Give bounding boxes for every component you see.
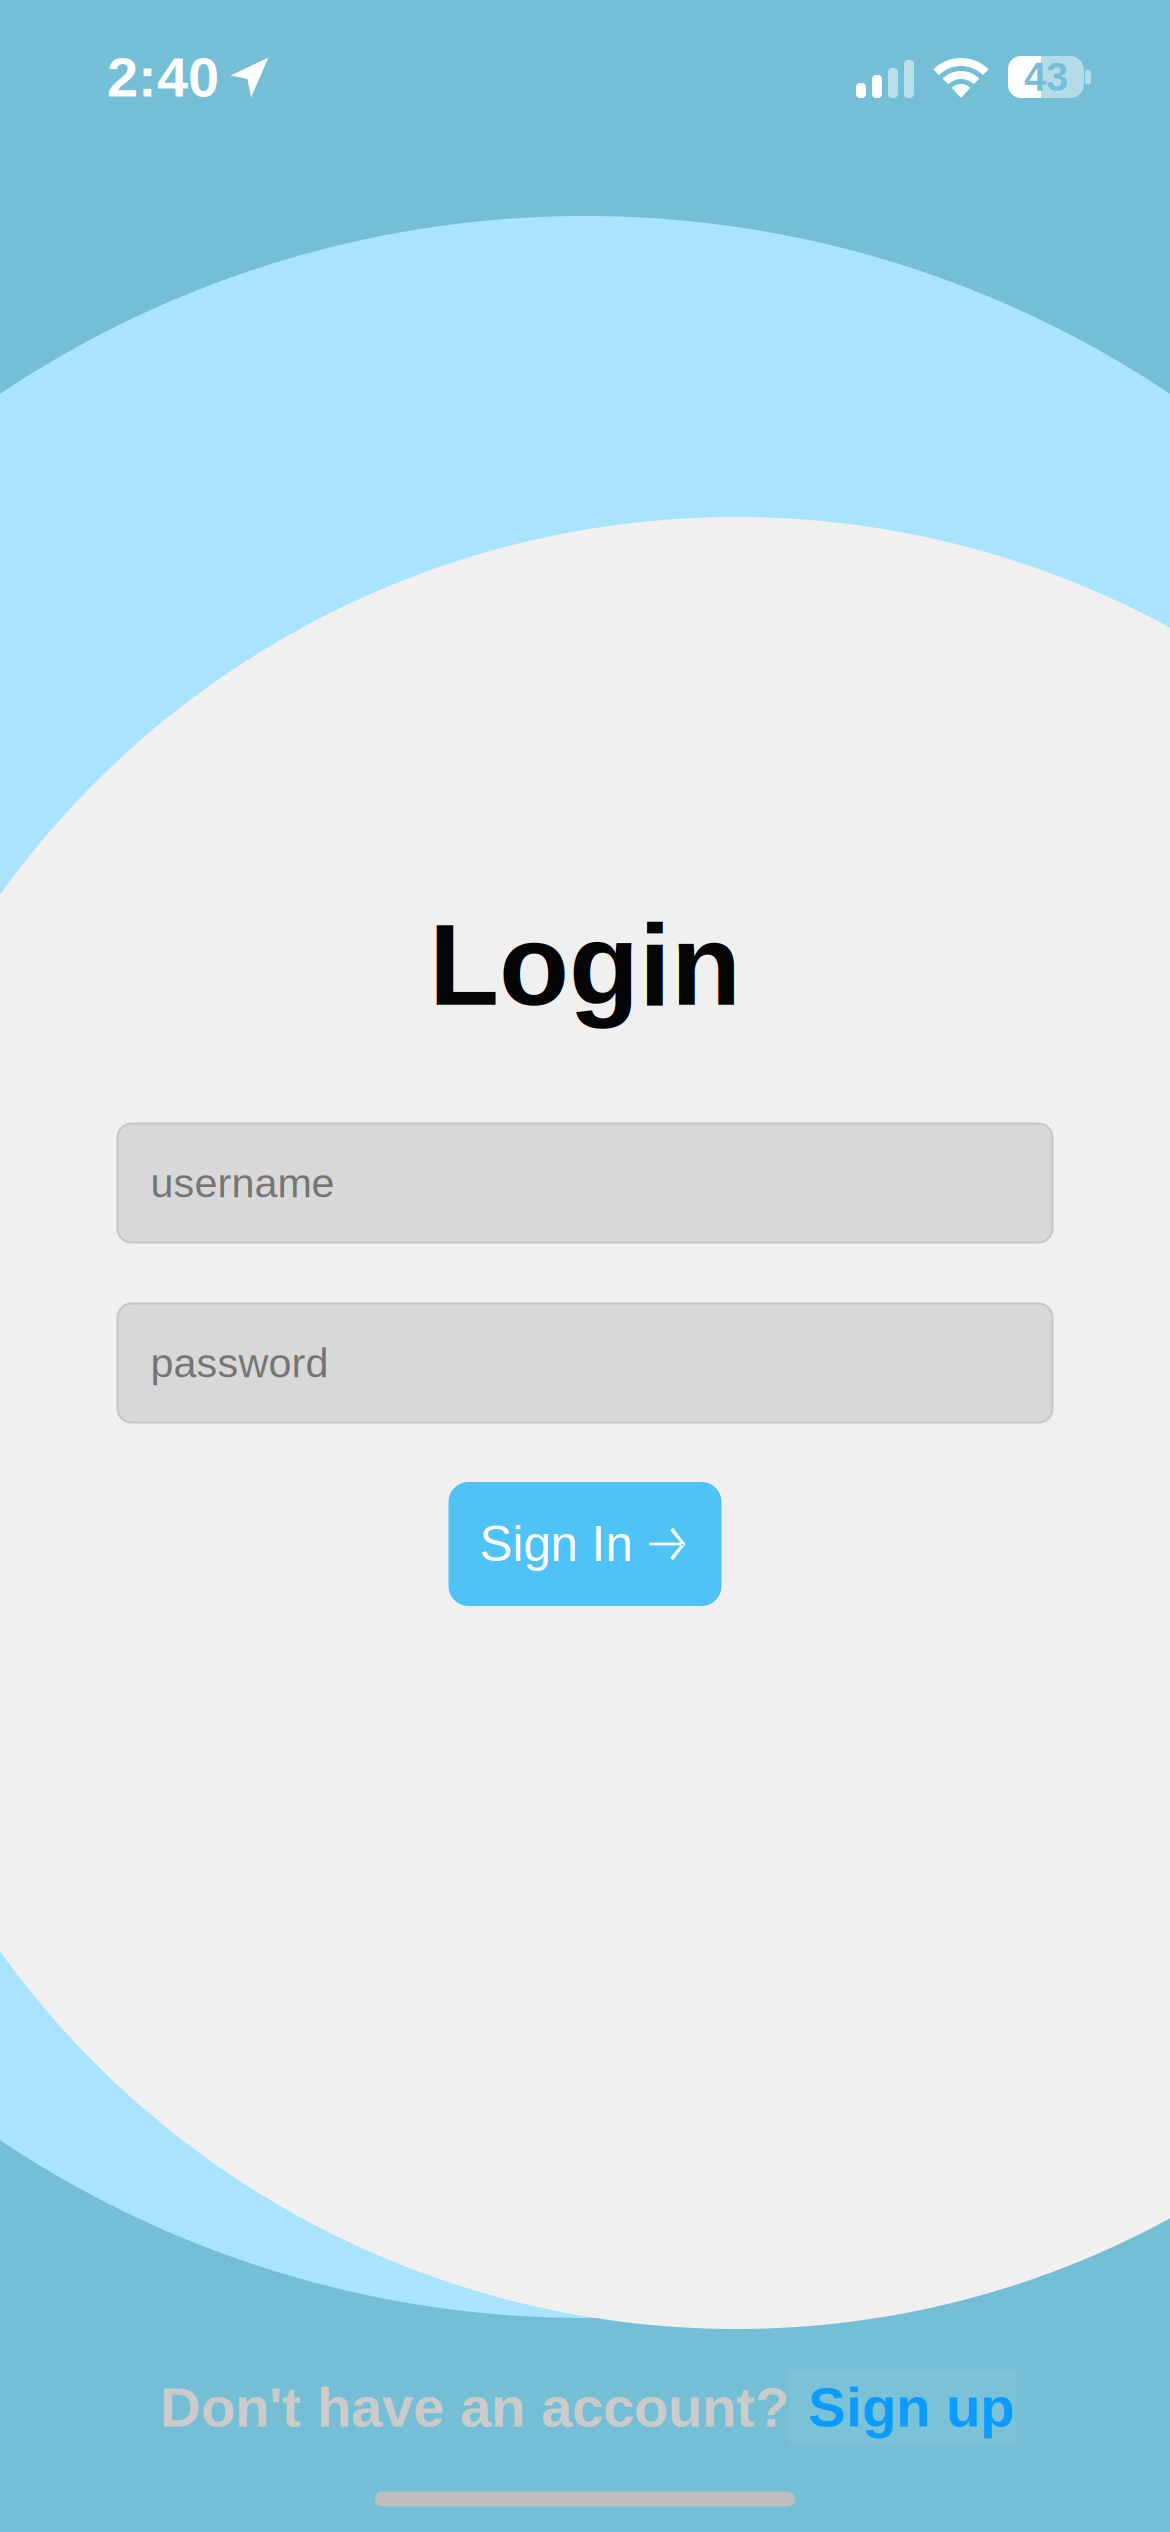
staticText: 43 xyxy=(1024,55,1068,99)
staticText: password xyxy=(150,1340,328,1386)
staticText: 2:40 xyxy=(107,46,219,108)
button[interactable]: password xyxy=(117,1303,1052,1422)
staticText: Login xyxy=(429,901,741,1029)
staticText: Sign up xyxy=(808,2376,1014,2438)
button[interactable]: Don't have an account? xyxy=(160,2370,1016,2444)
staticText: Sign In xyxy=(479,1516,632,1571)
button[interactable]: username xyxy=(117,1123,1052,1242)
staticText: Don't have an account? xyxy=(160,2376,789,2438)
staticText: username xyxy=(150,1160,334,1206)
button[interactable]: Sign In xyxy=(448,1482,721,1606)
